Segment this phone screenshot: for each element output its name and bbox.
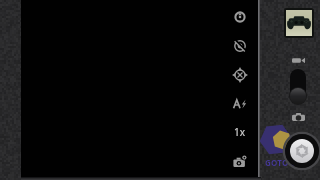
button[interactable]: Timer	[228, 6, 252, 28]
button[interactable]: Switch between photo and video	[290, 69, 306, 104]
button[interactable]: Photo mode	[292, 113, 305, 121]
button[interactable]: 1x	[228, 121, 252, 143]
staticText: 1x	[234, 125, 246, 139]
button[interactable]: Video mode	[292, 57, 305, 64]
button[interactable]: Flash auto	[228, 93, 252, 115]
button[interactable]: Focus mode	[228, 64, 252, 86]
button[interactable]: Gallery	[284, 8, 314, 38]
staticText: GOTO BNK	[265, 157, 309, 168]
button[interactable]: More camera settings	[228, 150, 252, 172]
button[interactable]: Motion photo off	[228, 35, 252, 57]
button[interactable]: Shutter	[290, 139, 314, 163]
